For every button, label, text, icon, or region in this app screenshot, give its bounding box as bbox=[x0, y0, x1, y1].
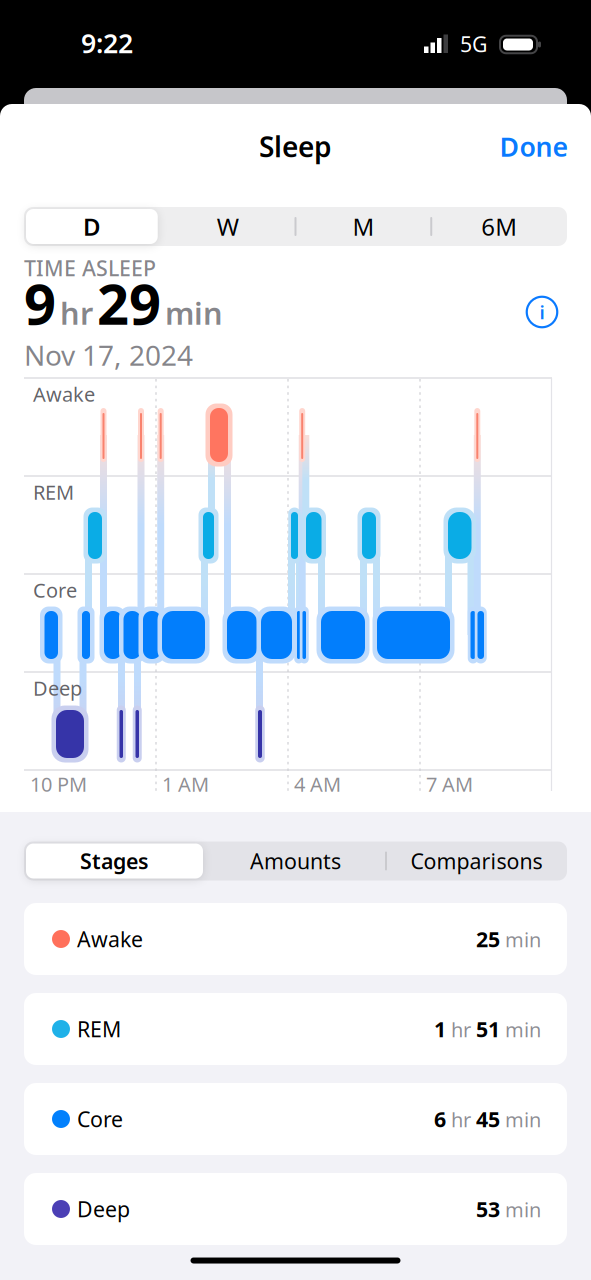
staticText: Awake bbox=[77, 925, 143, 953]
staticText: min bbox=[505, 1106, 541, 1133]
staticText: 9 bbox=[24, 266, 56, 340]
button[interactable]: W bbox=[160, 207, 296, 246]
staticText: REM bbox=[77, 1015, 121, 1043]
staticText: hr bbox=[60, 292, 93, 333]
button[interactable]: Stages bbox=[24, 841, 205, 880]
staticText: Nov 17, 2024 bbox=[24, 336, 193, 374]
staticText: Done bbox=[499, 129, 568, 164]
staticText: 1 bbox=[434, 1015, 446, 1043]
staticText: 6M bbox=[481, 211, 517, 242]
button[interactable]: D bbox=[24, 207, 160, 246]
staticText: 6 bbox=[434, 1105, 446, 1133]
staticText: Comparisons bbox=[410, 847, 542, 875]
staticText: hr bbox=[451, 1106, 471, 1133]
staticText: i bbox=[539, 300, 544, 324]
staticText: 5G bbox=[460, 30, 488, 58]
staticText: 1 AM bbox=[162, 771, 209, 797]
staticText: 7 AM bbox=[426, 771, 473, 797]
button[interactable]: Amounts bbox=[205, 841, 386, 880]
button[interactable]: 6M bbox=[431, 207, 567, 246]
staticText: D bbox=[83, 211, 101, 242]
staticText: REM bbox=[33, 479, 74, 505]
staticText: min bbox=[505, 1196, 541, 1223]
staticText: Awake bbox=[33, 381, 95, 407]
staticText: 25 bbox=[476, 925, 500, 953]
staticText: min bbox=[505, 1016, 541, 1043]
staticText: Stages bbox=[80, 847, 149, 875]
staticText: W bbox=[217, 211, 239, 242]
staticText: Core bbox=[33, 577, 77, 603]
staticText: 45 bbox=[476, 1105, 500, 1133]
button[interactable]: M bbox=[295, 207, 431, 246]
staticText: Deep bbox=[77, 1195, 130, 1223]
staticText: Deep bbox=[33, 675, 82, 701]
staticText: min bbox=[165, 292, 223, 333]
staticText: TIME ASLEEP bbox=[24, 254, 156, 282]
staticText: 9:22 bbox=[81, 25, 133, 61]
staticText: 53 bbox=[476, 1195, 500, 1223]
staticText: M bbox=[352, 211, 374, 242]
staticText: 4 AM bbox=[294, 771, 341, 797]
staticText: Core bbox=[77, 1105, 123, 1133]
button[interactable]: Comparisons bbox=[386, 841, 567, 880]
staticText: 51 bbox=[476, 1015, 500, 1043]
staticText: Sleep bbox=[259, 128, 332, 165]
staticText: 29 bbox=[97, 266, 161, 340]
staticText: min bbox=[505, 926, 541, 953]
staticText: hr bbox=[451, 1016, 471, 1043]
button[interactable]: Done bbox=[499, 129, 568, 164]
staticText: Amounts bbox=[250, 847, 341, 875]
staticText: 10 PM bbox=[30, 771, 87, 797]
button[interactable]: About Time Asleep bbox=[527, 297, 557, 327]
